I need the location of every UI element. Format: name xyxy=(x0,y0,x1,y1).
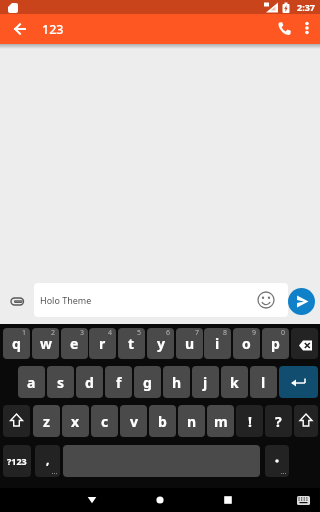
button[interactable]: y xyxy=(147,328,174,359)
staticText: 2:37 xyxy=(297,1,315,13)
button[interactable]: b xyxy=(149,405,176,437)
button[interactable] xyxy=(149,489,171,511)
button[interactable]: q xyxy=(3,328,30,359)
staticText: 1 xyxy=(22,328,27,338)
button[interactable]: ? xyxy=(265,405,292,437)
staticText: w xyxy=(40,334,52,353)
button[interactable]: Holo Theme xyxy=(34,283,288,317)
staticText: , xyxy=(46,451,50,467)
staticText: 7 xyxy=(195,328,200,338)
staticText: a xyxy=(27,373,36,392)
button[interactable]: g xyxy=(134,366,161,398)
button[interactable] xyxy=(257,291,275,309)
staticText: 3 xyxy=(80,328,85,338)
staticText: e xyxy=(70,334,79,353)
button[interactable] xyxy=(292,489,314,511)
staticText: 8 xyxy=(223,328,228,338)
staticText: 123 xyxy=(42,21,64,38)
staticText: k xyxy=(230,373,239,392)
staticText: ?123 xyxy=(7,455,27,467)
button[interactable]: o xyxy=(233,328,260,359)
staticText: m xyxy=(214,412,228,431)
button[interactable]: , xyxy=(35,445,60,477)
staticText: 2 xyxy=(51,328,56,338)
staticText: 5 xyxy=(137,328,142,338)
staticText: q xyxy=(12,334,21,353)
staticText: Holo Theme xyxy=(40,294,92,306)
button[interactable] xyxy=(272,17,296,41)
button[interactable] xyxy=(4,288,30,314)
staticText: b xyxy=(158,412,167,431)
button[interactable]: z xyxy=(33,405,60,437)
button[interactable]: j xyxy=(192,366,219,398)
staticText: z xyxy=(43,412,50,431)
button[interactable]: a xyxy=(18,366,45,398)
button[interactable]: f xyxy=(105,366,132,398)
button[interactable]: k xyxy=(221,366,248,398)
staticText: u xyxy=(185,334,195,353)
button[interactable]: ! xyxy=(236,405,263,437)
button[interactable] xyxy=(81,489,103,511)
staticText: h xyxy=(172,373,182,392)
staticText: 6 xyxy=(166,328,171,338)
button[interactable]: r xyxy=(89,328,116,359)
button[interactable]: p xyxy=(262,328,289,359)
staticText: 0 xyxy=(281,328,286,338)
button[interactable] xyxy=(3,405,30,437)
staticText: c xyxy=(101,412,109,431)
staticText: x xyxy=(71,412,80,431)
staticText: y xyxy=(157,334,165,353)
button[interactable]: i xyxy=(204,328,231,359)
staticText: 9 xyxy=(252,328,257,338)
staticText: f xyxy=(116,373,122,392)
button[interactable]: t xyxy=(118,328,145,359)
button[interactable]: ?123 xyxy=(3,445,31,477)
button[interactable]: l xyxy=(250,366,277,398)
button[interactable]: u xyxy=(176,328,203,359)
staticText: 4 xyxy=(108,328,113,338)
button[interactable] xyxy=(291,328,318,359)
button[interactable] xyxy=(217,489,239,511)
button[interactable] xyxy=(294,405,318,437)
button[interactable] xyxy=(288,288,315,315)
button[interactable]: m xyxy=(207,405,234,437)
staticText: l xyxy=(261,373,266,392)
staticText: v xyxy=(130,412,138,431)
button[interactable]: w xyxy=(32,328,59,359)
button[interactable] xyxy=(8,17,32,41)
staticText: p xyxy=(271,334,280,353)
button[interactable]: n xyxy=(178,405,205,437)
staticText: o xyxy=(242,334,251,353)
button[interactable] xyxy=(265,445,289,477)
staticText: t xyxy=(128,334,135,353)
button[interactable] xyxy=(279,366,318,398)
button[interactable]: h xyxy=(163,366,190,398)
button[interactable]: x xyxy=(62,405,89,437)
button[interactable]: e xyxy=(61,328,88,359)
button[interactable]: d xyxy=(76,366,103,398)
button[interactable]: v xyxy=(120,405,147,437)
button[interactable]: s xyxy=(47,366,74,398)
staticText: r xyxy=(99,334,106,353)
staticText: g xyxy=(143,373,152,392)
button[interactable] xyxy=(296,17,318,39)
staticText: ! xyxy=(248,412,252,431)
staticText: d xyxy=(85,373,94,392)
staticText: ? xyxy=(275,412,282,431)
staticText: j xyxy=(203,373,208,392)
staticText: i xyxy=(215,334,220,353)
staticText: s xyxy=(57,373,65,392)
staticText: n xyxy=(187,412,197,431)
button[interactable]: c xyxy=(91,405,118,437)
